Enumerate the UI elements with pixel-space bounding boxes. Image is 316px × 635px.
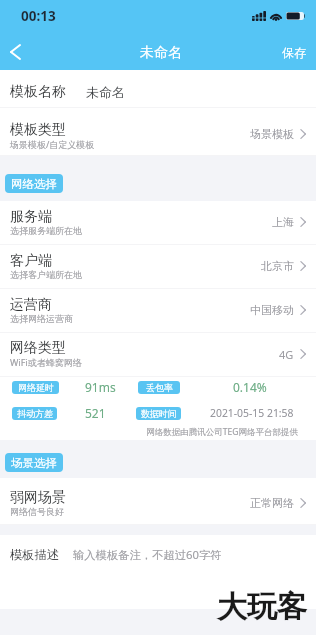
staticText: 91ms <box>85 379 116 395</box>
staticText: 网络选择 <box>11 177 57 191</box>
button[interactable]: 模板名称 <box>0 70 316 108</box>
staticText: 网络数据由腾讯公司TEG网络平台部提供 <box>0 426 298 438</box>
button[interactable]: 客户端 <box>0 245 316 289</box>
staticText: 数据时间 <box>141 408 177 419</box>
staticText: WiFi或者蜂窝网络 <box>10 356 82 368</box>
staticText: 未命名 <box>86 84 125 100</box>
staticText: 服务端 <box>10 208 52 226</box>
staticText: 选择客户端所在地 <box>10 269 82 280</box>
staticText: 丢包率 <box>146 382 173 393</box>
staticText: 输入模板备注，不超过60字符 <box>73 547 222 562</box>
staticText: 弱网场景 <box>10 489 66 507</box>
staticText: 运营商 <box>10 296 52 314</box>
button[interactable]: 网络类型 <box>0 333 316 377</box>
staticText: 场景模板 <box>250 127 294 141</box>
staticText: 保存 <box>282 45 306 60</box>
button[interactable]: 保存 <box>272 34 316 67</box>
staticText: 模板名称 <box>10 83 66 101</box>
button[interactable]: 服务端 <box>0 201 316 245</box>
button[interactable]: 网络选择 <box>5 174 63 193</box>
staticText: 4G <box>279 347 294 362</box>
staticText: 未命名 <box>140 44 182 62</box>
staticText: 网络延时 <box>18 382 54 393</box>
button[interactable]: 弱网场景 <box>0 478 316 525</box>
staticText: 2021-05-15 21:58 <box>210 406 294 420</box>
button[interactable]: Back <box>0 36 30 66</box>
staticText: 0.14% <box>233 379 267 395</box>
staticText: 521 <box>85 405 106 421</box>
staticText: 选择网络运营商 <box>10 313 73 324</box>
staticText: 正常网络 <box>250 496 294 510</box>
button[interactable]: 运营商 <box>0 289 316 333</box>
staticText: 场景模板/自定义模板 <box>10 138 95 150</box>
staticText: 大玩客 <box>217 588 307 626</box>
staticText: 00:13 <box>21 7 56 25</box>
staticText: 客户端 <box>10 252 52 270</box>
staticText: 模板类型 <box>10 121 66 139</box>
button[interactable]: 模板描述 <box>0 535 316 609</box>
staticText: 网络类型 <box>10 339 66 357</box>
button[interactable]: 模板类型 <box>0 108 316 156</box>
staticText: 中国移动 <box>250 303 294 317</box>
staticText: 选择服务端所在地 <box>10 225 82 236</box>
staticText: 北京市 <box>261 259 294 273</box>
button[interactable]: 场景选择 <box>5 453 63 472</box>
staticText: 场景选择 <box>11 456 57 470</box>
staticText: 模板描述 <box>10 547 60 562</box>
staticText: 网络信号良好 <box>10 506 64 517</box>
staticText: 抖动方差 <box>17 408 53 419</box>
staticText: 上海 <box>272 215 294 229</box>
